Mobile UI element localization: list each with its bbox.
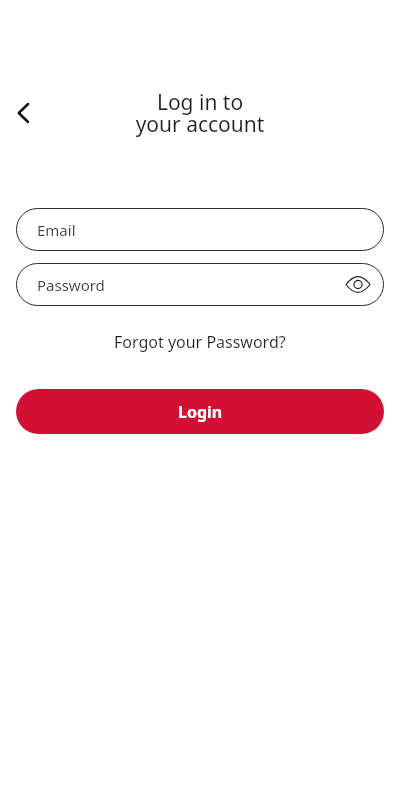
- staticText: Password: [37, 275, 105, 295]
- staticText: Login: [178, 401, 223, 423]
- button[interactable]: Password: [16, 263, 384, 306]
- button[interactable]: Email: [16, 208, 384, 251]
- button[interactable]: Login: [16, 389, 384, 434]
- staticText: Forgot your Password?: [114, 331, 286, 353]
- staticText: Log in to your account: [0, 88, 400, 138]
- staticText: Email: [37, 220, 76, 240]
- button[interactable]: [6, 96, 40, 130]
- button[interactable]: Forgot your Password?: [0, 331, 400, 353]
